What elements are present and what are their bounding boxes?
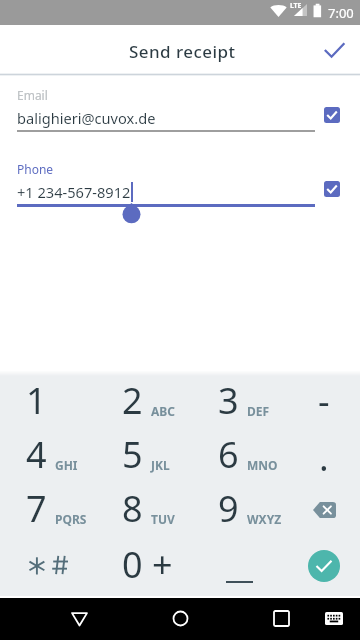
button[interactable]: 0 [96,539,192,593]
button[interactable]: Phone checkbox, checked [324,181,340,197]
staticText: 9 [218,484,239,533]
button[interactable]: 5 [96,429,192,483]
staticText: Email [17,87,48,103]
staticText: 7 [26,484,47,533]
button[interactable]: 2 [96,375,192,429]
button[interactable]: Email checkbox, checked [324,107,340,123]
staticText: balighieri@cuvox.de [17,108,156,128]
staticText: 5 [122,430,143,479]
button[interactable]: 4 [0,429,96,483]
staticText: 6 [218,430,239,479]
staticText: Send receipt [129,40,236,63]
staticText: DEF [247,403,270,419]
button[interactable]: Dash [288,375,360,429]
button[interactable]: Switch keyboard [313,605,354,631]
button[interactable]: Backspace [288,483,360,537]
button[interactable]: Space [192,539,288,593]
button[interactable]: 9 [192,483,288,537]
staticText: + [152,540,173,589]
staticText: MNO [247,457,278,473]
button[interactable]: Period [288,429,360,483]
staticText: 4 [26,430,47,479]
staticText: TUV [151,511,175,527]
staticText: 7:00 [328,4,354,22]
staticText: . [319,433,329,482]
button[interactable]: 7 [0,483,96,537]
button[interactable]: 8 [96,483,192,537]
staticText: 0 [122,540,143,589]
button[interactable]: Recent apps [255,605,307,631]
staticText: Phone [17,161,54,177]
button[interactable]: *# [0,539,96,593]
button[interactable]: Send [308,25,360,75]
button[interactable]: 1 [0,375,96,429]
button[interactable]: Enter [288,539,360,593]
staticText: +1 234-567-8912 [17,182,131,202]
button[interactable]: Back [53,605,105,631]
staticText: GHI [55,457,78,473]
staticText: 8 [122,484,143,533]
staticText: LTE [290,1,302,11]
button[interactable]: Home [154,605,206,631]
staticText: ABC [151,403,175,419]
staticText: PQRS [55,511,87,527]
staticText: 1 [26,376,47,425]
staticText: 3 [218,376,239,425]
button[interactable]: 3 [192,375,288,429]
staticText: - [318,376,330,425]
staticText: JKL [151,457,170,473]
button[interactable]: 6 [192,429,288,483]
staticText: WXYZ [247,511,282,527]
staticText: 2 [122,376,143,425]
